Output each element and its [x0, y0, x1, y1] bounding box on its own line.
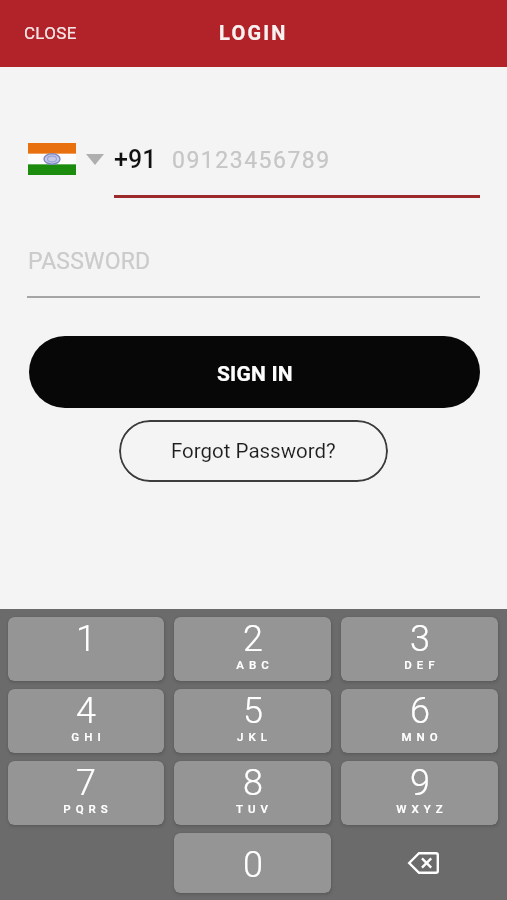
staticText: +91	[114, 145, 157, 174]
staticText: MNO	[401, 730, 443, 743]
staticText: JKL	[237, 730, 272, 743]
staticText: PQRS	[63, 802, 113, 815]
button[interactable]: 1	[8, 617, 164, 681]
button[interactable]: 4	[8, 689, 164, 753]
button[interactable]: 0	[174, 833, 331, 893]
staticText: Forgot Password?	[171, 439, 336, 463]
button[interactable]: Backspace	[341, 833, 498, 893]
staticText: 9	[410, 762, 430, 804]
staticText: GHI	[71, 730, 106, 743]
button[interactable]: CLOSE	[0, 9, 97, 57]
button[interactable]: 6	[341, 689, 498, 753]
staticText: 2	[243, 618, 263, 660]
staticText: SIGN IN	[217, 362, 293, 387]
button[interactable]: 3	[341, 617, 498, 681]
button[interactable]: 5	[174, 689, 331, 753]
button[interactable]: 2	[174, 617, 331, 681]
staticText: 4	[76, 690, 96, 732]
staticText: LOGIN	[219, 21, 288, 44]
staticText: ABC	[236, 658, 274, 671]
staticText: 5	[243, 690, 263, 732]
staticText: 8	[243, 762, 263, 804]
staticText: 1	[76, 618, 96, 660]
button[interactable]: SIGN IN	[29, 336, 480, 408]
staticText: DEF	[404, 658, 440, 671]
staticText: 09123456789	[172, 147, 331, 174]
staticText: 0	[243, 844, 263, 886]
button[interactable]: Forgot Password?	[119, 420, 388, 482]
staticText: 6	[410, 690, 430, 732]
button[interactable]: 9	[341, 761, 498, 825]
button[interactable]: 7	[8, 761, 164, 825]
staticText: PASSWORD	[28, 248, 151, 275]
staticText: 7	[76, 762, 96, 804]
staticText: WXYZ	[396, 802, 448, 815]
button[interactable]: 8	[174, 761, 331, 825]
other: Select country code	[86, 154, 104, 165]
staticText: 3	[410, 618, 430, 660]
staticText: TUV	[236, 802, 273, 815]
staticText: CLOSE	[24, 23, 77, 43]
